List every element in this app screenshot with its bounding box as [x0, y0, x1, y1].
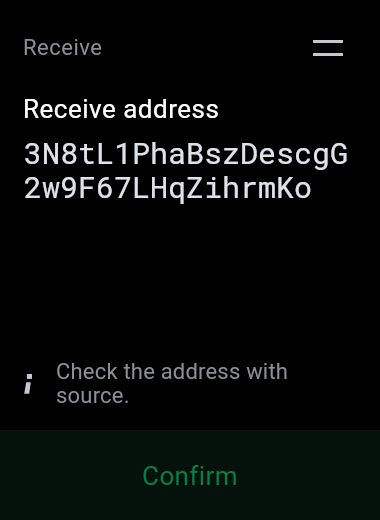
staticText: Confirm: [142, 461, 238, 491]
staticText: Receive: [23, 35, 103, 61]
staticText: Receive address: [23, 94, 220, 124]
staticText: Check the address with source.: [56, 359, 306, 408]
other: Information: [22, 372, 36, 396]
button[interactable]: Receive address: [0, 94, 380, 206]
staticText: 3N8tL1PhaBszDescgG2w9F67LHqZihrmKo: [24, 133, 364, 206]
button[interactable]: Confirm: [0, 430, 380, 520]
button[interactable]: Menu: [304, 24, 352, 72]
